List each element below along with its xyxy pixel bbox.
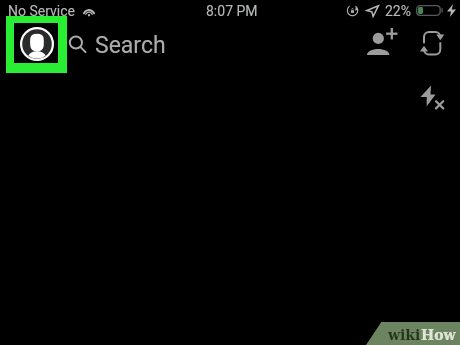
button[interactable]: Profile [14, 23, 58, 63]
staticText: wiki [388, 327, 421, 343]
button[interactable]: Flip Camera [418, 27, 448, 59]
button[interactable]: Flash Off [418, 82, 448, 112]
staticText: Search [95, 32, 166, 59]
button[interactable]: Search [66, 28, 171, 60]
button[interactable]: Add Friends [363, 26, 399, 58]
staticText: 8:07 PM [206, 3, 258, 19]
staticText: How [421, 327, 456, 343]
staticText: No Service [8, 3, 75, 19]
staticText: 22% [385, 3, 411, 19]
